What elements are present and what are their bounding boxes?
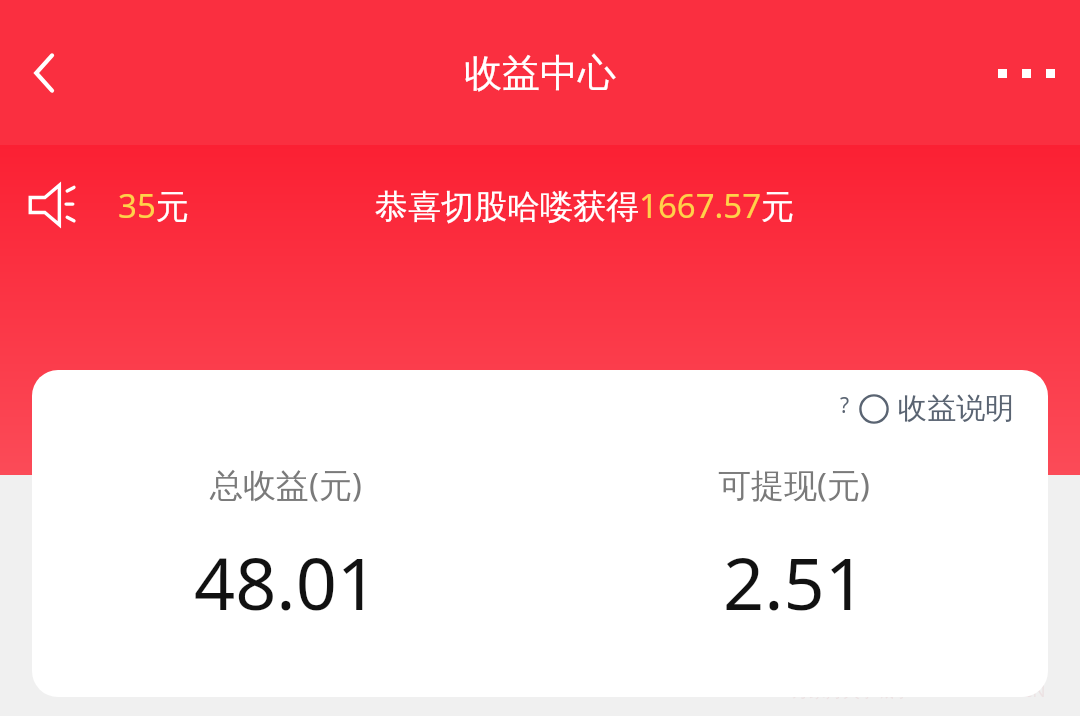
staticText: 万家灯火恭城事 WWW.GC520.CN: [792, 679, 1046, 702]
staticText: 35元: [118, 183, 189, 228]
button[interactable]: 收益说明: [859, 390, 1014, 427]
button[interactable]: 总收益(元): [32, 462, 540, 631]
staticText: 48.01: [194, 533, 379, 631]
staticText: 总收益(元): [210, 462, 362, 507]
button[interactable]: Back: [8, 36, 82, 110]
staticText: 恭喜切股哈喽获得1667.57元: [375, 183, 795, 228]
button[interactable]: More options: [986, 36, 1066, 110]
staticText: 收益中心: [464, 49, 616, 97]
button[interactable]: 可提现(元): [540, 462, 1048, 631]
button[interactable]: 35元: [0, 145, 1080, 265]
staticText: 2.51: [723, 533, 866, 631]
staticText: 收益说明: [898, 390, 1014, 427]
staticText: ?: [840, 391, 850, 420]
staticText: 可提现(元): [718, 462, 870, 507]
